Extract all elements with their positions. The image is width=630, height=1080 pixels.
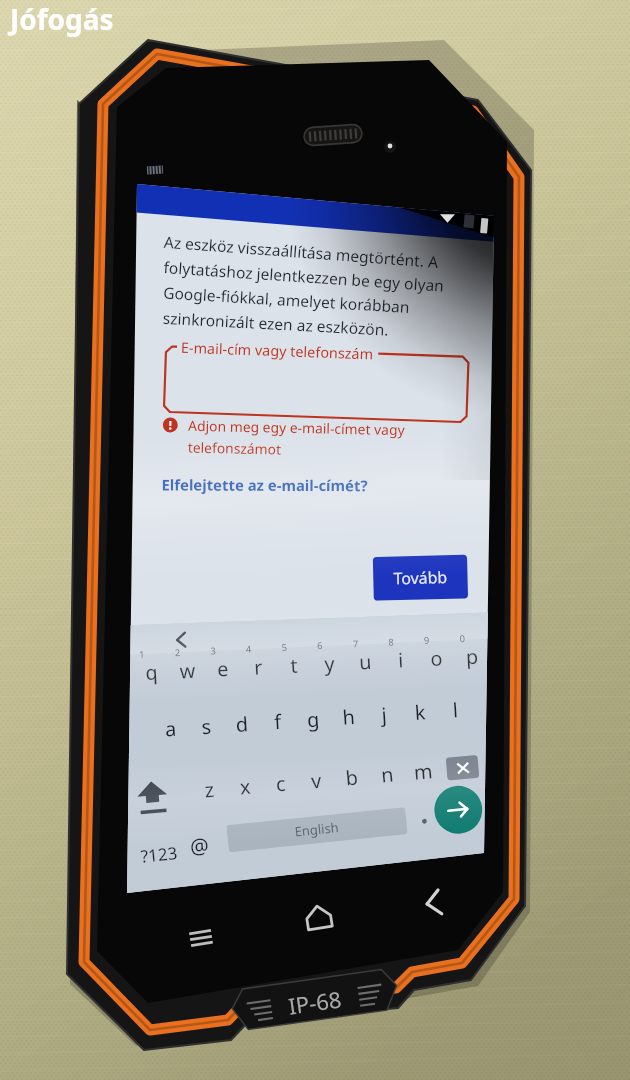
button[interactable]: g — [290, 694, 324, 746]
button[interactable]: f — [256, 694, 290, 746]
button[interactable]: z — [192, 746, 226, 798]
button[interactable]: k — [392, 694, 426, 746]
button[interactable]: j — [358, 694, 392, 746]
button[interactable]: i — [374, 640, 408, 694]
button[interactable]: x — [226, 746, 260, 798]
button[interactable]: s — [188, 694, 222, 746]
button[interactable]: Shift — [132, 746, 188, 798]
button[interactable]: b — [328, 746, 362, 798]
button[interactable]: Tovább — [372, 556, 470, 598]
button[interactable]: d — [222, 694, 256, 746]
button[interactable]: Enter — [432, 786, 484, 838]
button[interactable]: n — [362, 746, 396, 798]
button[interactable]: Elfelejtette az e-mail-címét? — [158, 468, 388, 504]
button[interactable]: Back — [408, 876, 460, 928]
button[interactable]: m — [396, 746, 430, 798]
button[interactable]: o — [408, 640, 442, 694]
button[interactable]: c — [260, 746, 294, 798]
button[interactable]: p — [442, 640, 476, 694]
button[interactable]: w — [170, 640, 204, 694]
button[interactable]: t — [272, 640, 306, 694]
button[interactable]: Menu — [176, 910, 228, 962]
button[interactable]: e — [204, 640, 238, 694]
button[interactable]: English — [228, 804, 418, 850]
button[interactable]: u — [340, 640, 374, 694]
button[interactable]: h — [324, 694, 358, 746]
button[interactable]: q — [136, 640, 170, 694]
button[interactable]: a — [154, 694, 188, 746]
button[interactable]: v — [294, 746, 328, 798]
button[interactable]: ?123 — [134, 804, 186, 856]
button[interactable]: E-mail-cím vagy telefonszám — [160, 343, 470, 413]
button[interactable]: Backspace — [440, 746, 486, 798]
button[interactable]: r — [238, 640, 272, 694]
button[interactable]: y — [306, 640, 340, 694]
button[interactable]: Home — [292, 892, 348, 944]
button[interactable]: @ — [186, 804, 228, 856]
button[interactable]: l — [426, 694, 460, 746]
